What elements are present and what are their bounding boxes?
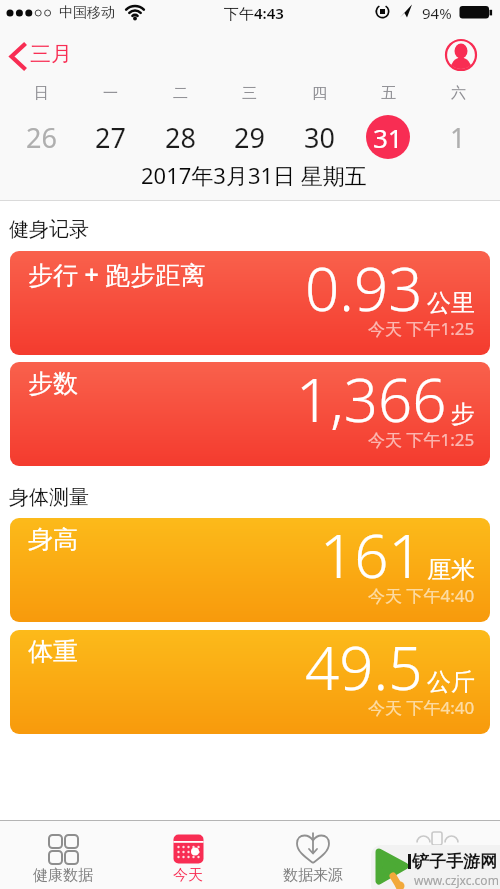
staticText: 94% bbox=[422, 3, 452, 23]
button[interactable]: 三月 bbox=[6, 40, 96, 70]
staticText: 今天 下午1:25 bbox=[368, 317, 475, 340]
staticText: 铲子手游网 bbox=[412, 851, 497, 872]
staticText: 六 bbox=[451, 84, 466, 102]
button[interactable]: 步数 bbox=[10, 362, 490, 466]
staticText: 2017年3月31日 星期五 bbox=[141, 160, 367, 190]
button[interactable]: 步行 + 跑步距离 bbox=[10, 251, 490, 355]
button[interactable]: 今天 bbox=[133, 822, 243, 888]
button[interactable] bbox=[444, 38, 478, 72]
staticText: 体重 bbox=[28, 636, 78, 667]
staticText: 中国移动 bbox=[59, 4, 115, 22]
staticText: 49.5 bbox=[305, 630, 423, 708]
staticText: 161 bbox=[320, 518, 423, 596]
staticText: 步 bbox=[451, 399, 475, 429]
staticText: 今天 下午1:25 bbox=[368, 428, 475, 451]
staticText: 公斤 bbox=[427, 667, 475, 697]
staticText: 31 bbox=[373, 120, 403, 155]
staticText: 30 bbox=[304, 119, 335, 156]
staticText: 今天 bbox=[173, 866, 203, 885]
staticText: 身高 bbox=[28, 524, 78, 555]
staticText: 今天 下午4:40 bbox=[368, 696, 475, 719]
staticText: 健康数据 bbox=[33, 866, 93, 885]
staticText: 四 bbox=[312, 84, 327, 102]
button[interactable]: 数据来源 bbox=[258, 822, 368, 888]
staticText: 三月 bbox=[30, 41, 72, 67]
button[interactable]: 身高 bbox=[10, 518, 490, 622]
staticText: 1 bbox=[450, 119, 466, 156]
staticText: 29 bbox=[234, 119, 265, 156]
staticText: 步数 bbox=[28, 368, 78, 399]
staticText: 28 bbox=[165, 119, 196, 156]
staticText: www.czjxc.com bbox=[414, 872, 499, 888]
staticText: 厘米 bbox=[427, 555, 475, 585]
staticText: 1,366 bbox=[296, 362, 447, 440]
staticText: 身体测量 bbox=[9, 485, 89, 510]
staticText: 26 bbox=[26, 119, 57, 156]
staticText: 五 bbox=[381, 84, 396, 102]
staticText: 数据来源 bbox=[283, 866, 343, 885]
staticText: 公里 bbox=[427, 288, 475, 318]
staticText: 健身记录 bbox=[9, 217, 89, 242]
staticText: 日 bbox=[34, 84, 49, 102]
staticText: 三 bbox=[242, 84, 257, 102]
button[interactable]: 体重 bbox=[10, 630, 490, 734]
button[interactable]: 31 bbox=[366, 115, 410, 159]
button[interactable]: 铲子手游网 bbox=[371, 845, 500, 889]
staticText: 27 bbox=[95, 119, 126, 156]
staticText: 下午4:43 bbox=[224, 3, 284, 23]
staticText: 步行 + 跑步距离 bbox=[28, 257, 206, 291]
staticText: 0.93 bbox=[305, 251, 423, 329]
staticText: 一 bbox=[103, 84, 118, 102]
staticText: 二 bbox=[173, 84, 188, 102]
staticText: 今天 下午4:40 bbox=[368, 584, 475, 607]
button[interactable]: 健康数据 bbox=[8, 822, 118, 888]
